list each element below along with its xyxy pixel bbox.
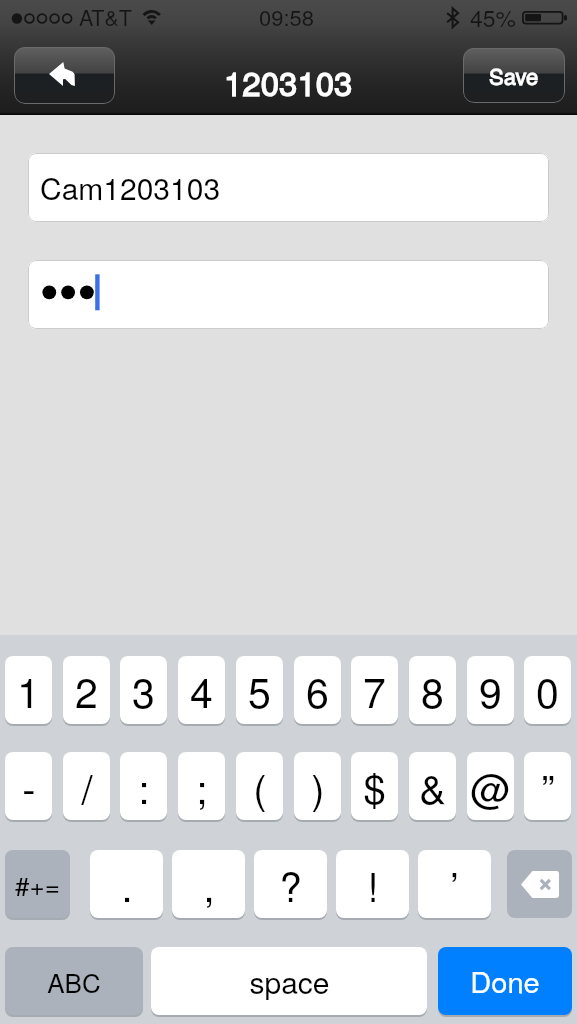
staticText: AT&T — [79, 1, 132, 32]
staticText: 1 — [17, 661, 40, 720]
staticText: space — [249, 960, 330, 1003]
staticText: 45% — [470, 1, 517, 34]
button[interactable]: & — [409, 752, 456, 822]
button[interactable]: ” — [524, 752, 571, 822]
staticText: ; — [196, 758, 208, 815]
button[interactable]: ( — [236, 752, 283, 822]
staticText: 6 — [306, 661, 329, 720]
staticText: ) — [311, 758, 325, 815]
button[interactable]: 7 — [351, 656, 398, 726]
staticText: 4 — [190, 661, 213, 720]
staticText: 3 — [132, 661, 155, 720]
staticText: ( — [253, 758, 267, 815]
button[interactable]: Cam1203103 — [28, 153, 549, 222]
staticText: 7 — [363, 661, 386, 720]
button[interactable]: 1 — [5, 656, 52, 726]
staticText: 2 — [75, 661, 98, 720]
staticText: 1203103 — [224, 58, 353, 105]
staticText: . — [121, 856, 133, 913]
button[interactable]: Done — [438, 947, 572, 1017]
staticText: ’ — [450, 856, 459, 913]
staticText: ! — [367, 856, 379, 913]
button[interactable]: - — [5, 752, 52, 822]
staticText: 8 — [421, 661, 444, 720]
button[interactable]: / — [63, 752, 110, 822]
staticText: : — [138, 758, 150, 815]
staticText: @ — [470, 758, 511, 815]
staticText: ? — [279, 856, 302, 913]
staticText: Save — [489, 60, 539, 92]
button[interactable]: ’ — [418, 850, 491, 920]
button[interactable]: 8 — [409, 656, 456, 726]
button[interactable]: 0 — [524, 656, 571, 726]
button[interactable]: $ — [351, 752, 398, 822]
button[interactable]: ABC — [5, 947, 143, 1017]
button[interactable]: Back — [14, 47, 115, 104]
staticText: & — [419, 758, 446, 815]
button[interactable]: 5 — [236, 656, 283, 726]
staticText: - — [22, 758, 36, 815]
staticText: 5 — [248, 661, 271, 720]
button[interactable]: 3 — [120, 656, 167, 726]
button[interactable]: space — [151, 947, 427, 1017]
staticText: , — [203, 856, 215, 913]
staticText: ABC — [47, 963, 101, 1000]
staticText: 09:58 — [259, 1, 315, 33]
button[interactable]: Save — [463, 48, 565, 103]
button[interactable]: ; — [178, 752, 225, 822]
staticText: ” — [541, 758, 555, 815]
button[interactable]: ? — [254, 850, 327, 920]
button[interactable]: 2 — [63, 656, 110, 726]
staticText: / — [81, 758, 93, 815]
button[interactable]: 4 — [178, 656, 225, 726]
button[interactable]: ! — [336, 850, 409, 920]
staticText: Done — [470, 960, 540, 1002]
button[interactable]: , — [172, 850, 245, 920]
button[interactable]: . — [90, 850, 163, 920]
staticText: 0 — [536, 661, 559, 720]
button[interactable]: 6 — [294, 656, 341, 726]
button[interactable]: @ — [467, 752, 514, 822]
button[interactable]: : — [120, 752, 167, 822]
button[interactable]: Backspace — [507, 850, 572, 918]
staticText: $ — [363, 758, 386, 815]
button[interactable]: #+= — [5, 850, 70, 920]
staticText: Cam1203103 — [40, 166, 221, 209]
button[interactable] — [28, 260, 549, 329]
staticText: 9 — [479, 661, 502, 720]
button[interactable]: 9 — [467, 656, 514, 726]
button[interactable]: ) — [294, 752, 341, 822]
staticText: #+= — [15, 866, 60, 903]
